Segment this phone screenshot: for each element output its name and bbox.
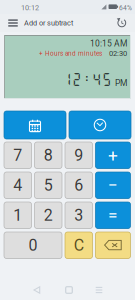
staticText: 64% (119, 4, 132, 12)
button[interactable]: Recents (90, 281, 108, 299)
button[interactable]: 2 (34, 202, 62, 228)
button[interactable]: Menu (3, 14, 23, 32)
staticText: 2 (44, 206, 53, 225)
staticText: 7 (13, 146, 22, 165)
button[interactable]: 8 (34, 142, 62, 168)
staticText: − (108, 175, 118, 195)
button[interactable]: 0 (4, 232, 62, 258)
button[interactable]: 4 (4, 172, 31, 198)
button[interactable]: 1 (4, 202, 31, 228)
button[interactable]: 6 (65, 172, 92, 198)
staticText: 10:12 (21, 3, 39, 12)
button[interactable]: = (95, 202, 130, 228)
staticText: 12:45 (62, 71, 112, 87)
button[interactable]: 7 (4, 142, 31, 168)
button[interactable]: 5 (34, 172, 62, 198)
button[interactable]: Backspace (95, 232, 130, 258)
staticText: 5 (44, 176, 53, 195)
button[interactable]: − (95, 172, 130, 198)
button[interactable]: History (113, 14, 131, 32)
button[interactable]: 9 (65, 142, 92, 168)
staticText: + Hours and minutes (39, 50, 102, 57)
staticText: 1 (13, 206, 22, 225)
button[interactable]: C (65, 232, 92, 258)
button[interactable]: Back (28, 281, 46, 299)
button[interactable]: + (95, 142, 130, 168)
staticText: PM (115, 78, 127, 88)
staticText: 0 (28, 236, 37, 255)
button[interactable]: Pick date (4, 111, 66, 139)
button[interactable]: Home (60, 281, 78, 299)
button[interactable]: 3 (65, 202, 92, 228)
staticText: 4 (13, 176, 22, 195)
staticText: + (108, 145, 118, 165)
staticText: 8 (44, 146, 53, 165)
staticText: 6 (74, 176, 83, 195)
staticText: 10:15 AM (90, 38, 127, 48)
button[interactable]: Pick time (69, 111, 131, 139)
staticText: Add or subtract (24, 19, 73, 27)
staticText: 02:30 (109, 49, 127, 58)
staticText: 3 (74, 206, 83, 225)
staticText: = (108, 205, 118, 225)
staticText: C (74, 236, 84, 255)
staticText: 9 (74, 146, 83, 165)
